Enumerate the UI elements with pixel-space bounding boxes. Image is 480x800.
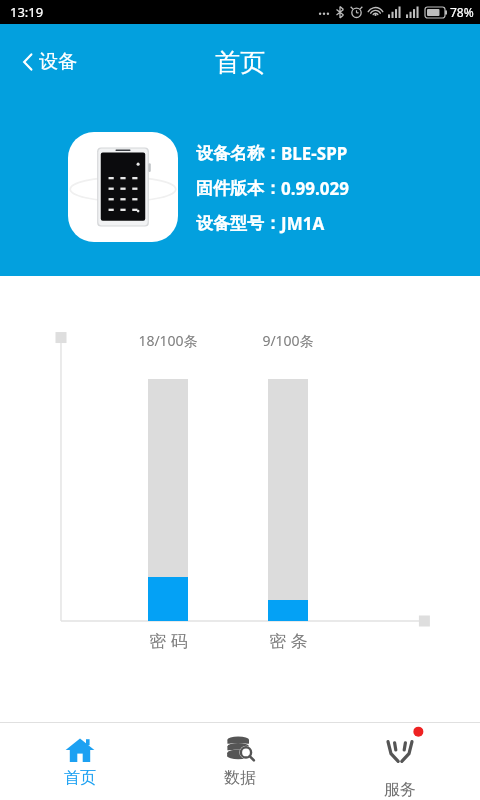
staticText: 首页 <box>64 768 96 788</box>
staticText: 设备型号： <box>196 213 281 234</box>
button[interactable]: 服务 <box>320 723 480 800</box>
staticText: 18/100条 <box>138 331 198 350</box>
staticText: JM1A <box>281 212 325 235</box>
staticText: 设备 <box>39 50 77 74</box>
staticText: 设备名称： <box>196 143 281 164</box>
staticText: 服务 <box>384 780 416 800</box>
staticText: 13:19 <box>10 3 44 21</box>
staticText: 数据 <box>224 768 256 788</box>
button[interactable]: 设备 <box>14 44 85 80</box>
staticText: 密 条 <box>269 629 308 652</box>
staticText: 密 码 <box>149 629 188 652</box>
staticText: BLE-SPP <box>281 142 348 165</box>
staticText: 首页 <box>215 47 265 78</box>
button[interactable]: 首页 <box>0 723 160 800</box>
staticText: 78% <box>450 4 474 20</box>
staticText: 0.99.029 <box>281 177 349 200</box>
staticText: 固件版本： <box>196 178 281 199</box>
button[interactable]: 数据 <box>160 723 320 800</box>
button[interactable]: Device <box>68 132 178 242</box>
staticText: 9/100条 <box>262 331 314 350</box>
